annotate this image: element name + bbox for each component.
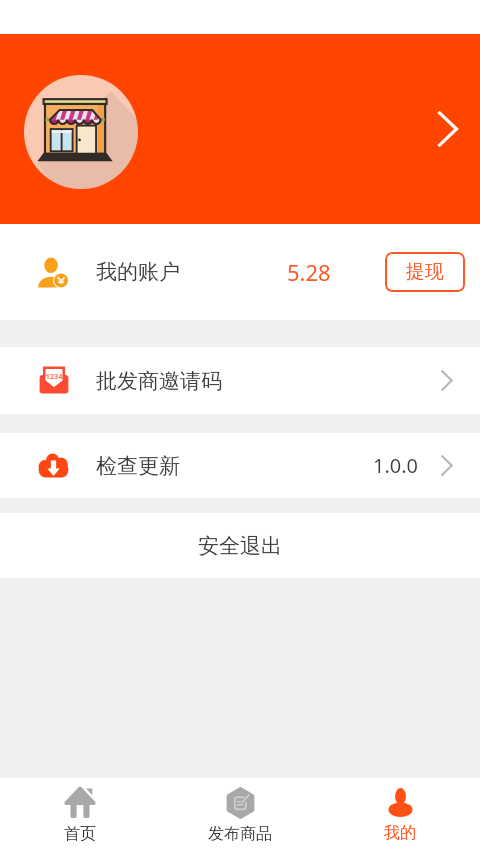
button[interactable]: 进入店铺 — [0, 34, 480, 224]
other: 首页 — [66, 788, 94, 818]
button[interactable]: 检查更新 — [0, 433, 480, 498]
button[interactable]: 首页 — [0, 778, 160, 853]
staticText: 批发商邀请码 — [96, 368, 222, 394]
button[interactable]: 1234 — [0, 347, 480, 414]
button[interactable]: 进入店铺 — [437, 110, 458, 148]
staticText: 检查更新 — [96, 453, 180, 479]
button[interactable]: 提现 — [385, 252, 465, 292]
staticText: 首页 — [64, 824, 96, 844]
staticText: 提现 — [406, 260, 444, 284]
staticText: 安全退出 — [198, 533, 282, 559]
button[interactable]: 我的账户 — [0, 224, 480, 320]
button[interactable]: 发布商品 — [160, 778, 320, 853]
staticText: 5.28 — [287, 257, 331, 287]
staticText: 1.0.0 — [373, 452, 419, 479]
button[interactable]: 安全退出 — [0, 513, 480, 578]
button[interactable]: 我的 — [320, 778, 480, 853]
other: 我的 — [387, 788, 414, 817]
staticText: 我的账户 — [96, 259, 180, 285]
other: 发布商品 — [227, 788, 254, 818]
staticText: 发布商品 — [208, 824, 272, 844]
staticText: 1234 — [45, 371, 63, 381]
staticText: 我的 — [384, 823, 416, 843]
